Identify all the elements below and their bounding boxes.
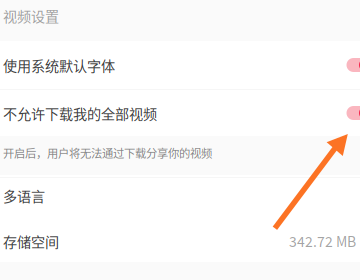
staticText: 视频设置 <box>3 5 59 26</box>
staticText: 多语言 <box>3 185 45 206</box>
button[interactable]: 存储空间 <box>0 221 360 262</box>
staticText: 342.72 MB <box>289 231 356 251</box>
staticText: 使用系统默认字体 <box>3 55 115 75</box>
button[interactable]: 多语言 <box>0 178 360 221</box>
staticText: 存储空间 <box>3 231 59 251</box>
staticText: 开启后，用户将无法通过下载分享你的视频 <box>3 145 212 161</box>
button[interactable]: 不允许下载我的全部视频 <box>0 90 360 136</box>
staticText: 不允许下载我的全部视频 <box>3 103 157 123</box>
button[interactable]: 使用系统默认字体 <box>0 41 360 89</box>
